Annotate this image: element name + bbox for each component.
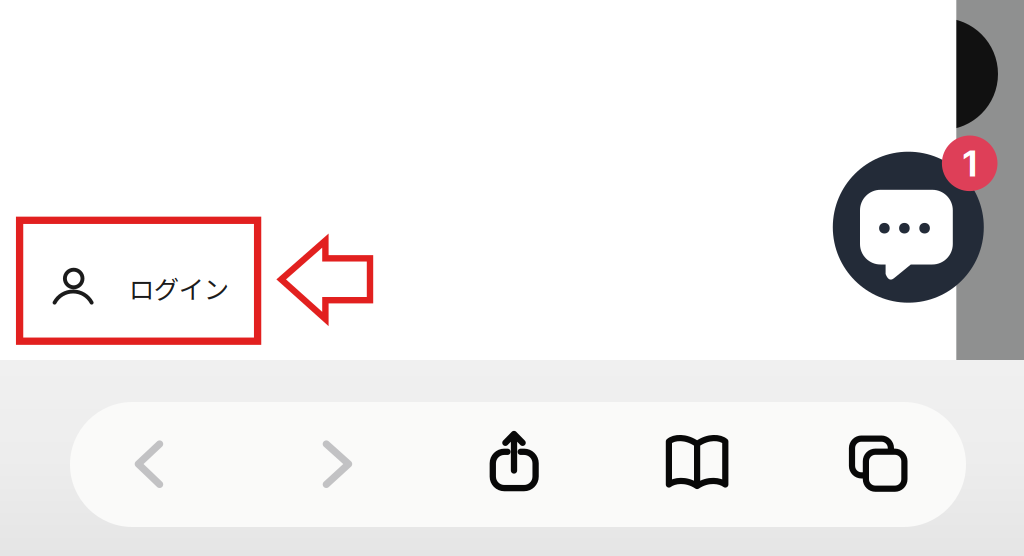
staticText: 1	[963, 141, 977, 185]
button[interactable]: Bookmarks	[655, 402, 739, 527]
button[interactable]: Tabs	[843, 402, 923, 527]
button[interactable]: ログイン	[53, 264, 239, 312]
button[interactable]: Back	[114, 402, 184, 527]
button[interactable]: Share	[476, 402, 554, 527]
button[interactable]: Open chat, 1 unread message	[833, 135, 1024, 302]
button[interactable]: Forward	[302, 402, 372, 527]
staticText: ログイン	[129, 270, 229, 306]
